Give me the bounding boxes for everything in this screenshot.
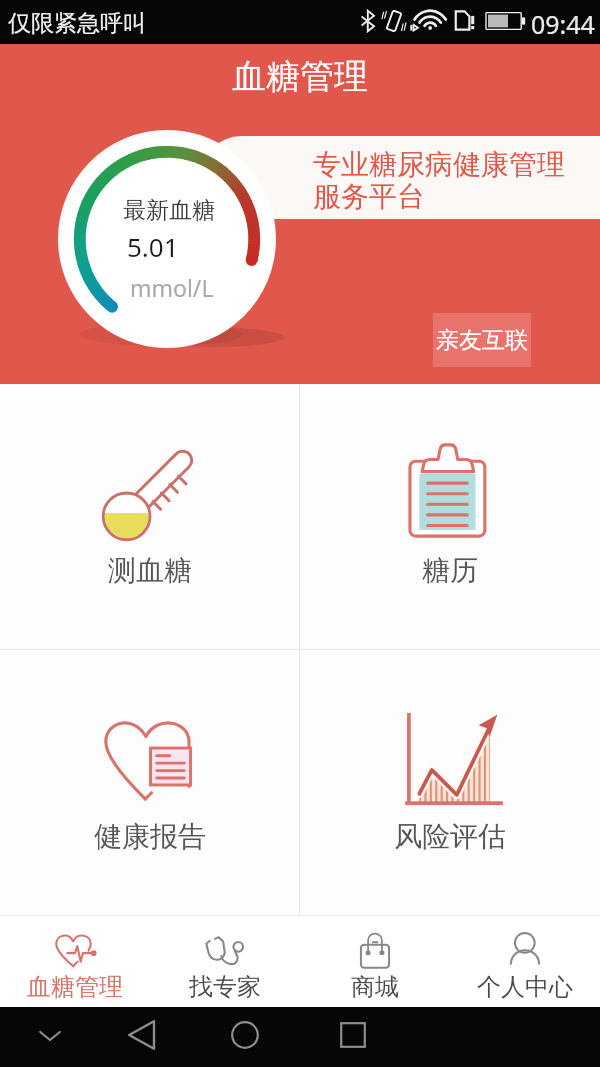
staticText: 健康报告 [94, 819, 206, 854]
staticText: 09:44 [531, 7, 595, 41]
staticText: 测血糖 [108, 553, 192, 588]
staticText: 血糖管理 [27, 972, 123, 1002]
button[interactable]: 风险评估 [300, 650, 600, 915]
button[interactable]: 找专家 [150, 916, 300, 1007]
staticText: 风险评估 [394, 819, 506, 854]
button[interactable]: 测血糖 [0, 384, 299, 649]
staticText: 5.01 [127, 229, 179, 264]
staticText: 亲友互联 [436, 326, 528, 355]
staticText: 血糖管理 [232, 55, 368, 98]
button[interactable]: Recents [333, 1015, 373, 1055]
staticText: 商城 [351, 972, 399, 1002]
button[interactable]: Home [225, 1015, 265, 1055]
button[interactable]: 血糖管理 [0, 916, 150, 1007]
button[interactable]: 糖历 [300, 384, 600, 649]
staticText: 个人中心 [477, 972, 573, 1002]
button[interactable]: 商城 [300, 916, 450, 1007]
button[interactable]: Back [122, 1015, 162, 1055]
button[interactable]: 亲友互联 [433, 313, 531, 367]
button[interactable]: Hide keyboard [30, 1015, 70, 1055]
staticText: 仅限紧急呼叫 [8, 9, 146, 38]
staticText: 找专家 [189, 972, 261, 1002]
button[interactable]: 个人中心 [450, 916, 600, 1007]
staticText: 专业糖尿病健康管理 服务平台 [313, 147, 565, 214]
staticText: 糖历 [422, 553, 478, 588]
button[interactable]: 健康报告 [0, 650, 299, 915]
staticText: mmol/L [130, 272, 214, 303]
staticText: 最新血糖 [123, 196, 215, 225]
